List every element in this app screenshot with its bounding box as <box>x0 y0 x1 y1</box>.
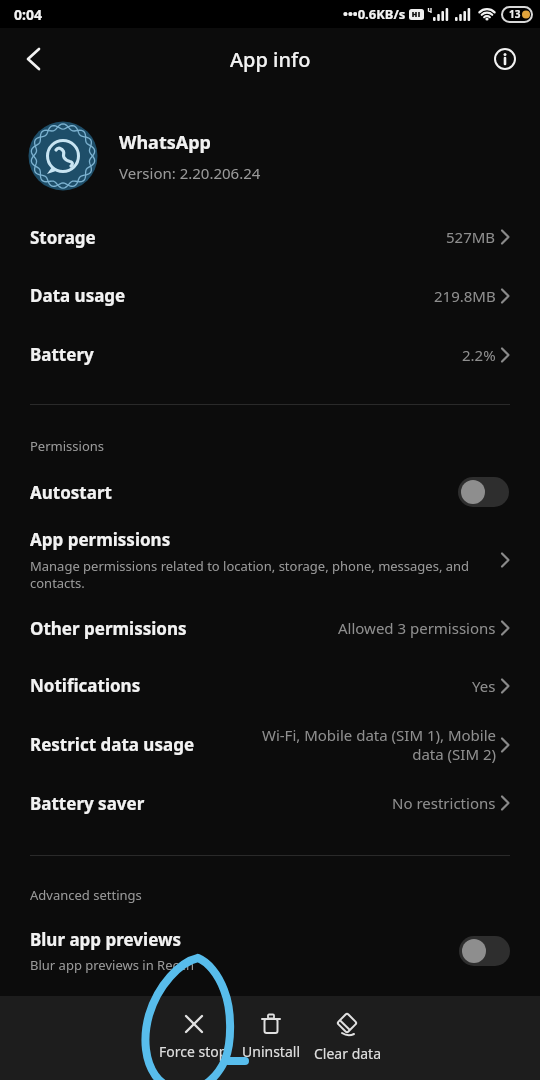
staticText: App info <box>230 46 311 73</box>
staticText: •••0.6KB/s <box>343 5 406 23</box>
button[interactable]: Force stop <box>155 996 232 1080</box>
staticText: Battery <box>30 343 94 366</box>
button[interactable]: Uninstall <box>232 996 309 1080</box>
staticText: Version: 2.20.206.24 <box>119 163 261 183</box>
button[interactable] <box>494 48 516 70</box>
staticText: 219.8MB <box>434 286 496 306</box>
button[interactable]: Battery <box>0 325 540 384</box>
staticText: Other permissions <box>30 617 187 640</box>
staticText: Wi-Fi, Mobile data (SIM 1), Mobile data … <box>261 725 496 764</box>
staticText: Uninstall <box>242 1042 300 1061</box>
button[interactable] <box>459 936 510 966</box>
staticText: Advanced settings <box>30 886 142 904</box>
staticText: Clear data <box>314 1044 382 1063</box>
button[interactable] <box>458 477 509 507</box>
staticText: App permissions <box>30 528 171 551</box>
staticText: Autostart <box>30 481 112 504</box>
staticText: Force stop <box>159 1042 228 1061</box>
staticText: Restrict data usage <box>30 733 195 756</box>
staticText: Yes <box>472 676 496 696</box>
staticText: 2.2% <box>462 345 496 365</box>
staticText: Storage <box>30 226 96 249</box>
staticText: Manage permissions related to location, … <box>30 557 470 592</box>
staticText: Notifications <box>30 674 141 697</box>
staticText: 0:04 <box>14 5 42 24</box>
staticText: WhatsApp <box>119 130 211 155</box>
button[interactable] <box>24 47 44 71</box>
button[interactable]: Notifications <box>0 656 540 715</box>
button[interactable]: Blur app previews <box>0 912 540 990</box>
button[interactable]: Data usage <box>0 266 540 325</box>
button[interactable]: Autostart <box>0 464 540 520</box>
button[interactable]: Other permissions <box>0 600 540 656</box>
button[interactable]: Clear data <box>309 996 386 1080</box>
staticText: Battery saver <box>30 792 145 815</box>
staticText: Data usage <box>30 284 126 307</box>
staticText: Allowed 3 permissions <box>338 618 496 638</box>
button[interactable]: App permissions <box>0 520 540 600</box>
staticText: Permissions <box>30 437 105 455</box>
button[interactable]: Battery saver <box>0 774 540 832</box>
staticText: 527MB <box>446 227 496 247</box>
button[interactable]: Restrict data usage <box>0 715 540 774</box>
staticText: Blur app previews <box>30 928 182 951</box>
button[interactable]: Storage <box>0 208 540 266</box>
staticText: No restrictions <box>392 793 496 813</box>
staticText: Blur app previews in Recen <box>30 956 195 974</box>
staticText: 13 <box>509 7 521 21</box>
